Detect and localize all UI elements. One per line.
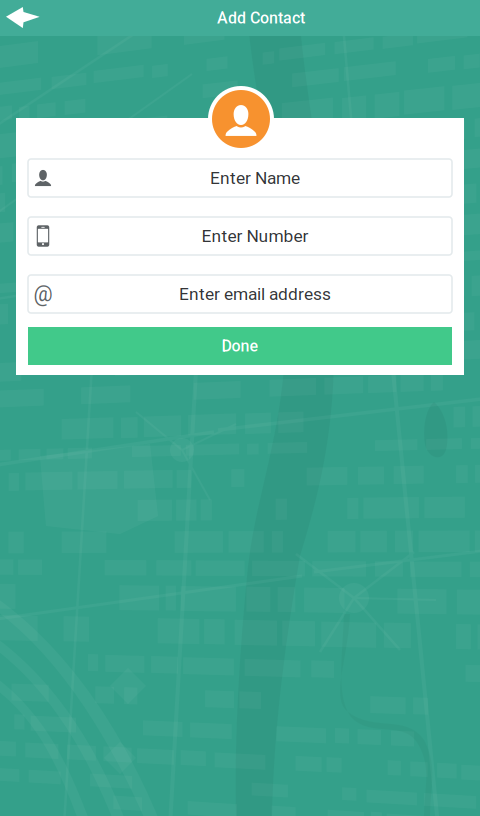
staticText: Add Contact [217, 9, 305, 27]
button[interactable]: Enter Number [28, 217, 452, 255]
button[interactable]: Enter Name [28, 159, 452, 197]
button[interactable]: Back [0, 0, 70, 36]
staticText: Enter email address [179, 284, 331, 304]
staticText: @ [33, 281, 52, 306]
staticText: Enter Name [210, 168, 300, 188]
button[interactable]: Done [28, 327, 452, 365]
staticText: Enter Number [201, 226, 308, 246]
button[interactable]: @ [28, 275, 452, 313]
staticText: Done [221, 337, 258, 355]
